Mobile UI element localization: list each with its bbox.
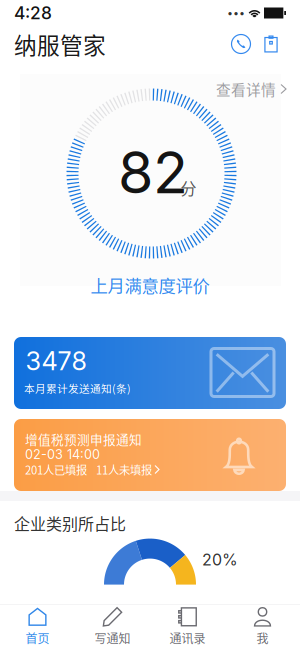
- staticText: 增值税预测申报通知: [25, 430, 142, 448]
- button[interactable]: 查看详情: [210, 72, 292, 106]
- staticText: 201人已填报: [25, 461, 87, 478]
- staticText: •••: [227, 6, 245, 19]
- staticText: 写通知: [94, 629, 130, 647]
- staticText: 首页: [25, 629, 49, 647]
- button[interactable]: 首页: [0, 604, 75, 650]
- staticText: 4:28: [14, 2, 52, 23]
- staticText: 分: [180, 176, 196, 199]
- button[interactable]: 写通知: [75, 604, 150, 650]
- staticText: 11人未填报: [96, 461, 152, 478]
- staticText: 82: [118, 138, 188, 207]
- button[interactable]: 通讯录: [150, 604, 225, 650]
- staticText: 上月满意度评价: [90, 272, 209, 298]
- button[interactable]: 3478: [14, 337, 286, 409]
- staticText: 我: [256, 629, 268, 647]
- staticText: 20%: [202, 550, 238, 569]
- staticText: [152, 461, 155, 478]
- staticText: 本月累计发送通知(条): [24, 380, 131, 396]
- button[interactable]: 我: [225, 604, 300, 650]
- button[interactable]: 增值税预测申报通知: [14, 419, 286, 491]
- staticText: 通讯录: [169, 629, 205, 647]
- staticText: 查看详情: [216, 78, 276, 100]
- staticText: 3478: [25, 346, 86, 376]
- button[interactable]: Call: [226, 29, 256, 59]
- staticText: 02-03 14:00: [25, 447, 100, 462]
- button[interactable]: Contact card: [256, 29, 286, 59]
- staticText: 纳服管家: [14, 28, 106, 60]
- staticText: 企业类别所占比: [14, 511, 126, 535]
